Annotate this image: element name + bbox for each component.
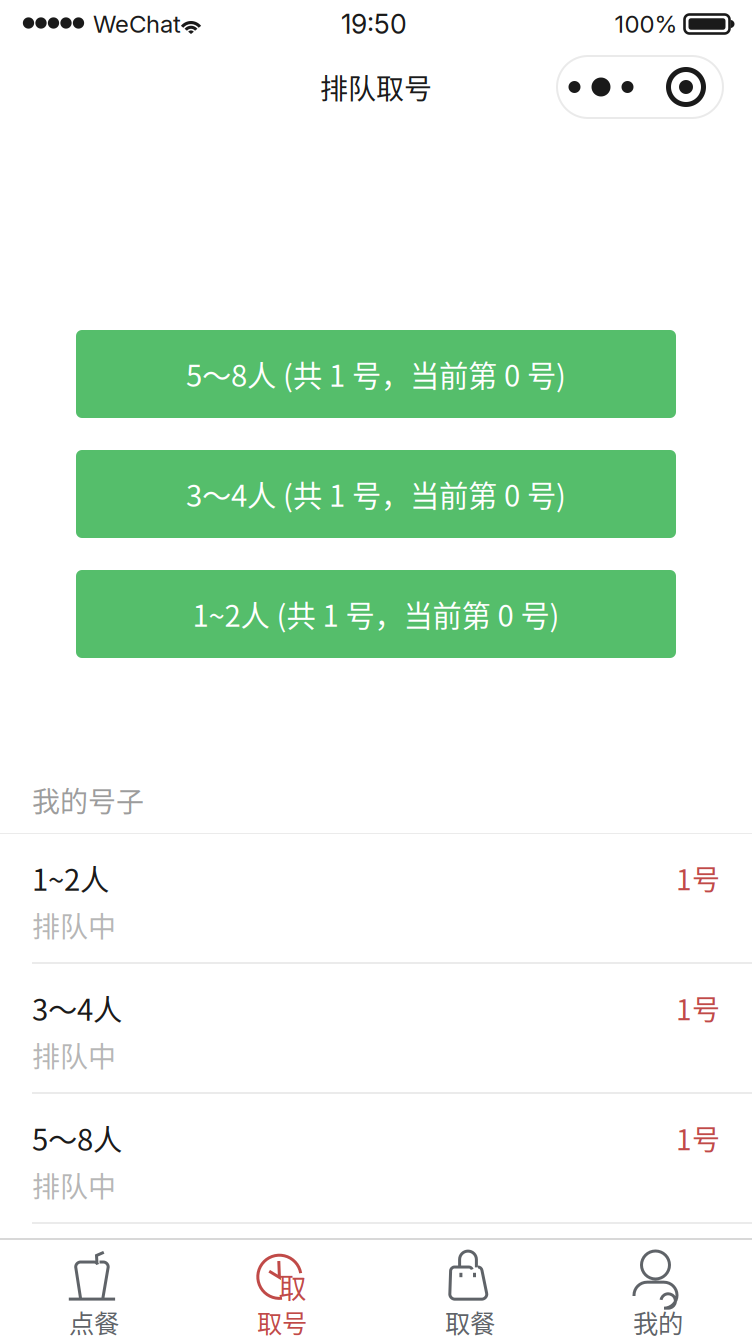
staticText: 5～8人 (32, 1117, 122, 1159)
staticText: 1号 (676, 858, 720, 898)
staticText: 5～8人 (共 1 号，当前第 0 号) (186, 353, 566, 395)
staticText: 排队中 (32, 905, 116, 945)
staticText: 排队中 (32, 1165, 116, 1205)
button[interactable]: 点餐 (0, 1240, 188, 1338)
staticText: 3～4人 (32, 987, 122, 1029)
button[interactable]: 取餐 (376, 1240, 564, 1338)
staticText: 我的 (633, 1304, 683, 1338)
staticText: 点餐 (69, 1304, 119, 1338)
staticText: WeChat (93, 9, 181, 38)
staticText: 取餐 (445, 1304, 495, 1338)
button[interactable]: 1~2人 (0, 834, 752, 962)
staticText: 取号 (257, 1304, 307, 1338)
staticText: 排队中 (32, 1035, 116, 1075)
staticText: 3～4人 (共 1 号，当前第 0 号) (186, 473, 566, 515)
button[interactable]: 3～4人 (共 1 号，当前第 0 号) (76, 450, 676, 538)
staticText: 1号 (676, 1118, 720, 1158)
button[interactable]: Menu (557, 56, 723, 118)
button[interactable]: 我的 (564, 1240, 752, 1338)
button[interactable]: 1~2人 (共 1 号，当前第 0 号) (76, 570, 676, 658)
staticText: 100% (614, 9, 677, 38)
staticText: 排队取号 (320, 67, 432, 107)
button[interactable]: 5～8人 (0, 1094, 752, 1222)
staticText: 我的号子 (32, 780, 144, 820)
staticText: 19:50 (341, 8, 407, 40)
staticText: 1~2人 (共 1 号，当前第 0 号) (192, 593, 559, 635)
staticText: 1号 (676, 988, 720, 1028)
staticText: 取 (278, 1266, 306, 1307)
button[interactable]: 5～8人 (共 1 号，当前第 0 号) (76, 330, 676, 418)
button[interactable]: 3～4人 (0, 964, 752, 1092)
staticText: 1~2人 (32, 857, 109, 899)
button[interactable]: 取 (188, 1240, 376, 1338)
